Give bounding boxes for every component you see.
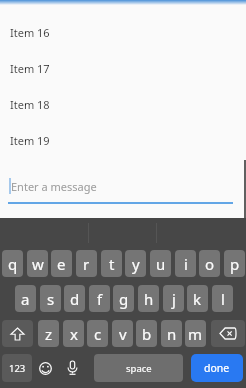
button[interactable] — [33, 354, 57, 382]
button[interactable]: k — [187, 285, 208, 312]
button[interactable]: g — [113, 285, 134, 312]
button[interactable]: Item 16 — [0, 14, 246, 50]
staticText: o — [205, 254, 215, 274]
button[interactable]: 123 — [2, 354, 32, 382]
staticText: i — [184, 254, 188, 274]
staticText: space — [126, 362, 152, 375]
staticText: h — [144, 289, 154, 309]
button[interactable] — [211, 320, 245, 347]
staticText: Item 19 — [10, 133, 50, 148]
staticText: w — [32, 254, 44, 274]
button[interactable]: y — [125, 250, 146, 277]
button[interactable]: w — [27, 250, 48, 277]
staticText: x — [70, 324, 78, 344]
staticText: m — [188, 324, 203, 344]
button[interactable]: n — [161, 320, 182, 347]
button[interactable]: e — [51, 250, 72, 277]
button[interactable]: p — [224, 250, 245, 277]
staticText: Item 18 — [10, 97, 50, 112]
staticText: u — [156, 254, 166, 274]
staticText: Item 17 — [10, 61, 50, 76]
button[interactable]: t — [101, 250, 122, 277]
button[interactable]: b — [136, 320, 157, 347]
button[interactable]: Item 18 — [0, 86, 246, 122]
staticText: g — [119, 289, 129, 309]
staticText: c — [94, 324, 102, 344]
staticText: v — [119, 324, 127, 344]
button[interactable]: d — [64, 285, 85, 312]
staticText: d — [70, 289, 80, 309]
staticText: n — [167, 324, 177, 344]
staticText: done — [204, 361, 230, 375]
staticText: b — [142, 324, 152, 344]
staticText: Enter a message — [11, 179, 97, 194]
button[interactable]: r — [76, 250, 97, 277]
button[interactable]: Item 19 — [0, 122, 246, 158]
button[interactable]: space — [94, 354, 183, 382]
button[interactable]: x — [63, 320, 84, 347]
staticText: q — [8, 254, 18, 274]
staticText: f — [97, 289, 103, 309]
staticText: p — [230, 254, 240, 274]
button[interactable]: Enter a message — [0, 166, 246, 203]
button[interactable]: v — [112, 320, 133, 347]
button[interactable]: l — [212, 285, 233, 312]
button[interactable]: f — [89, 285, 110, 312]
button[interactable]: Item 17 — [0, 50, 246, 86]
button[interactable]: a — [15, 285, 36, 312]
staticText: r — [83, 254, 90, 274]
staticText: k — [193, 289, 202, 309]
staticText: y — [132, 254, 140, 274]
staticText: j — [172, 289, 176, 309]
button[interactable]: o — [199, 250, 220, 277]
staticText: e — [57, 254, 66, 274]
button[interactable]: s — [40, 285, 61, 312]
staticText: z — [45, 324, 53, 344]
button[interactable]: h — [138, 285, 159, 312]
button[interactable]: u — [150, 250, 171, 277]
button[interactable]: m — [185, 320, 206, 347]
staticText: s — [47, 289, 55, 309]
button[interactable]: j — [163, 285, 184, 312]
staticText: 123 — [9, 362, 26, 375]
staticText: l — [221, 289, 225, 309]
button[interactable]: done — [191, 354, 243, 382]
button[interactable] — [60, 354, 84, 382]
button[interactable]: z — [38, 320, 59, 347]
button[interactable]: i — [175, 250, 196, 277]
button[interactable]: c — [87, 320, 108, 347]
button[interactable]: q — [2, 250, 23, 277]
staticText: a — [21, 289, 30, 309]
button[interactable] — [2, 320, 33, 347]
staticText: t — [109, 254, 115, 274]
staticText: Item 16 — [10, 25, 50, 40]
